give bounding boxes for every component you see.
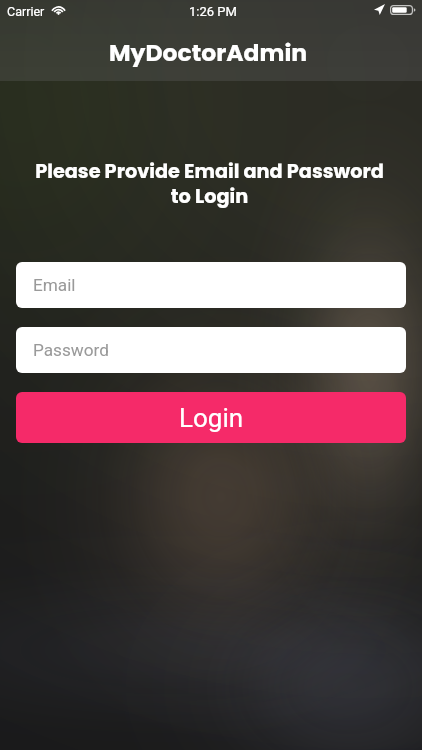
staticText: Email xyxy=(33,275,76,295)
button[interactable]: Email xyxy=(16,262,406,308)
other: Location xyxy=(374,4,385,15)
other: Wi-Fi xyxy=(52,5,65,15)
staticText: MyDoctorAdmin xyxy=(109,36,308,69)
button[interactable]: Password xyxy=(16,327,406,373)
button[interactable]: Login xyxy=(16,392,406,443)
other: Battery xyxy=(390,5,416,15)
staticText: Carrier xyxy=(7,4,45,19)
staticText: Login xyxy=(179,403,244,433)
staticText: Please Provide Email and Password to Log… xyxy=(13,158,406,209)
staticText: Password xyxy=(33,340,109,360)
staticText: 1:26 PM xyxy=(189,4,237,19)
